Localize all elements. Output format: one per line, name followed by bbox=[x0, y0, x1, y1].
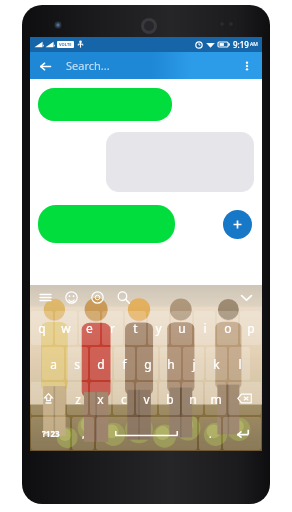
button[interactable]: p bbox=[240, 311, 261, 345]
button[interactable]: c bbox=[113, 382, 134, 415]
button[interactable]: v bbox=[136, 382, 157, 415]
button[interactable]: . bbox=[199, 417, 221, 450]
staticText: o bbox=[224, 320, 232, 336]
button[interactable]: e bbox=[79, 311, 100, 345]
button[interactable]: a bbox=[42, 347, 64, 380]
staticText: s bbox=[74, 356, 80, 372]
staticText: c bbox=[121, 391, 127, 407]
staticText: 9:19 bbox=[233, 39, 249, 50]
button[interactable]: s bbox=[66, 347, 88, 380]
button[interactable]: z bbox=[67, 382, 88, 415]
button[interactable]: Menu bbox=[37, 289, 54, 306]
button[interactable]: u bbox=[171, 311, 192, 345]
staticText: x bbox=[97, 391, 104, 407]
staticText: b bbox=[166, 391, 174, 407]
staticText: d bbox=[97, 356, 105, 372]
staticText: , bbox=[43, 41, 45, 48]
button[interactable]: d bbox=[90, 347, 112, 380]
staticText: v bbox=[143, 391, 150, 407]
staticText: t bbox=[133, 320, 138, 336]
staticText: h bbox=[167, 356, 175, 372]
staticText: n bbox=[189, 391, 197, 407]
button[interactable]: i bbox=[194, 311, 215, 345]
button[interactable] bbox=[106, 132, 254, 192]
button[interactable]: l bbox=[229, 347, 250, 380]
button[interactable]: h bbox=[160, 347, 181, 380]
staticText: e bbox=[86, 320, 93, 336]
staticText: i bbox=[203, 320, 207, 336]
button[interactable] bbox=[96, 417, 197, 450]
button[interactable]: New message bbox=[223, 210, 252, 239]
staticText: AM bbox=[250, 41, 258, 48]
staticText: z bbox=[75, 391, 81, 407]
button[interactable]: , bbox=[72, 417, 94, 450]
staticText: a bbox=[50, 356, 57, 372]
button[interactable]: g bbox=[137, 347, 158, 380]
staticText: . bbox=[209, 427, 212, 441]
button[interactable]: ?123 bbox=[31, 417, 70, 450]
staticText: , bbox=[82, 427, 85, 441]
button[interactable]: q bbox=[31, 311, 53, 345]
button[interactable]: j bbox=[183, 347, 204, 380]
button[interactable]: Emoji bbox=[63, 289, 80, 306]
button[interactable]: Back bbox=[36, 57, 54, 75]
staticText: u bbox=[178, 320, 186, 336]
staticText: Search... bbox=[66, 58, 110, 73]
button[interactable]: f bbox=[114, 347, 135, 380]
button[interactable]: Backspace bbox=[228, 382, 261, 415]
staticText: r bbox=[110, 320, 115, 336]
button[interactable]: Search bbox=[115, 289, 132, 306]
staticText: m bbox=[210, 391, 222, 407]
staticText: f bbox=[122, 356, 127, 372]
staticText: k bbox=[213, 356, 220, 372]
staticText: VOLTE bbox=[59, 42, 72, 47]
button[interactable]: m bbox=[205, 382, 226, 415]
staticText: ?123 bbox=[42, 428, 60, 439]
button[interactable]: n bbox=[182, 382, 203, 415]
button[interactable]: t bbox=[125, 311, 146, 345]
button[interactable]: Shift bbox=[31, 382, 65, 415]
button[interactable]: Search... bbox=[66, 52, 238, 79]
button[interactable]: Hide keyboard bbox=[238, 289, 255, 306]
button[interactable]: b bbox=[159, 382, 180, 415]
staticText: w bbox=[61, 320, 71, 336]
button[interactable]: w bbox=[55, 311, 77, 345]
button[interactable]: r bbox=[102, 311, 123, 345]
button[interactable]: x bbox=[90, 382, 111, 415]
staticText: p bbox=[247, 320, 255, 336]
button[interactable] bbox=[38, 88, 172, 121]
staticText: l bbox=[238, 356, 242, 372]
staticText: , bbox=[54, 41, 56, 48]
staticText: q bbox=[38, 320, 46, 336]
staticText: g bbox=[144, 356, 152, 372]
button[interactable]: More options bbox=[238, 57, 256, 75]
button[interactable]: k bbox=[206, 347, 227, 380]
staticText: j bbox=[192, 356, 196, 372]
button[interactable]: o bbox=[217, 311, 238, 345]
button[interactable]: Enter bbox=[223, 417, 261, 450]
staticText: y bbox=[155, 320, 162, 336]
button[interactable] bbox=[38, 205, 175, 243]
button[interactable]: y bbox=[148, 311, 169, 345]
button[interactable]: Art themes bbox=[89, 289, 106, 306]
